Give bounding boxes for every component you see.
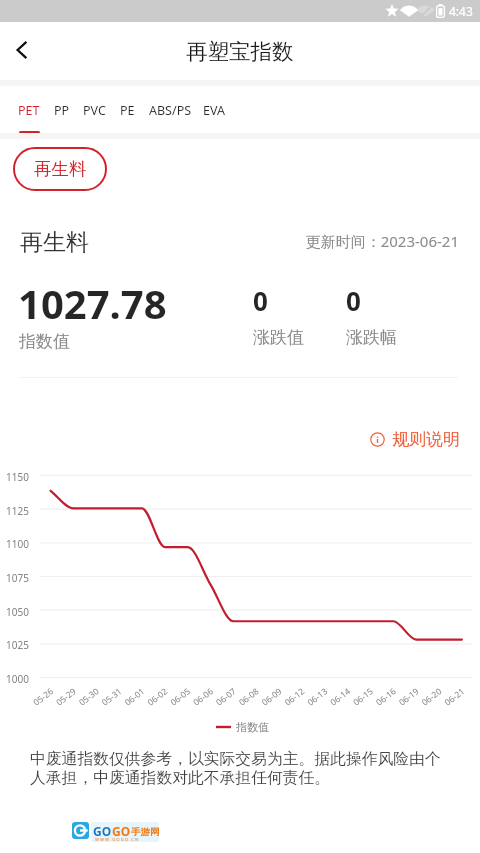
staticText: 再生料	[34, 158, 87, 180]
staticText: 手游网	[131, 826, 160, 838]
staticText: 涨跌值	[253, 327, 304, 348]
staticText: GO	[93, 823, 112, 839]
staticText: 再塑宝指数	[186, 38, 294, 65]
button[interactable]: PE	[117, 102, 149, 134]
staticText: 更新时间：2023-06-21	[0, 231, 459, 251]
staticText: PVC	[83, 102, 106, 119]
button[interactable]: EVA	[203, 102, 225, 134]
staticText: PE	[120, 102, 135, 119]
staticText: 指数值	[19, 331, 70, 352]
staticText: EVA	[203, 102, 225, 119]
staticText: 中废通指数仅供参考，以实际交易为主。据此操作风险由个人承担，中废通指数对此不承担…	[30, 749, 450, 787]
staticText: GO	[112, 823, 131, 839]
staticText: 涨跌幅	[346, 327, 397, 348]
staticText: 0	[346, 283, 361, 318]
button[interactable]: ABS/PS	[149, 102, 203, 134]
button[interactable]: PVC	[83, 102, 117, 134]
staticText: W W W . G O G O . C N	[95, 837, 139, 843]
button[interactable]: PET	[18, 102, 51, 134]
staticText: 4:43	[449, 3, 473, 19]
button[interactable]: 再生料	[13, 147, 107, 191]
button[interactable]: 规则说明	[366, 426, 464, 453]
staticText: PET	[18, 102, 40, 119]
staticText: 1027.78	[18, 276, 167, 330]
button[interactable]: Back	[0, 28, 44, 72]
button[interactable]: PP	[51, 102, 83, 134]
staticText: ABS/PS	[149, 102, 192, 119]
staticText: PP	[54, 102, 70, 119]
staticText: 0	[253, 283, 268, 318]
staticText: 规则说明	[392, 429, 460, 450]
staticText: 再生料	[20, 228, 89, 257]
